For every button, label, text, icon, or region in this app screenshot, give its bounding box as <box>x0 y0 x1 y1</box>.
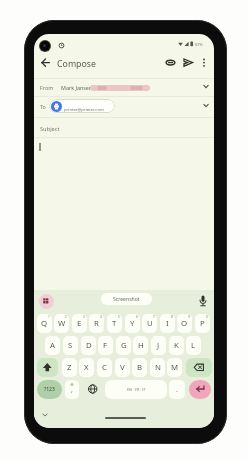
button[interactable]: L <box>186 336 201 355</box>
button[interactable]: A <box>45 336 60 355</box>
button[interactable] <box>196 294 211 309</box>
staticText: P <box>200 318 205 329</box>
staticText: B <box>137 362 143 373</box>
staticText: T <box>112 318 117 329</box>
button[interactable]: B <box>132 358 147 377</box>
button[interactable]: O <box>177 314 192 333</box>
button[interactable]: G <box>116 336 131 355</box>
button[interactable] <box>39 294 54 309</box>
staticText: Compose <box>57 58 97 70</box>
staticText: E <box>77 318 82 329</box>
button[interactable] <box>37 358 58 377</box>
staticText: J <box>157 340 160 351</box>
button[interactable]: I <box>160 314 175 333</box>
button[interactable] <box>196 55 211 70</box>
staticText: Y <box>130 318 135 329</box>
button[interactable]: N <box>150 358 165 377</box>
staticText: EN · FR · IT <box>127 387 146 392</box>
button[interactable]: W <box>54 314 69 333</box>
button[interactable]: , <box>65 380 79 399</box>
staticText: A <box>50 340 55 351</box>
staticText: 0 <box>206 315 208 319</box>
staticText: 9 <box>188 315 190 319</box>
button[interactable] <box>38 55 53 70</box>
staticText: . <box>176 385 178 395</box>
staticText: 4 <box>100 315 102 319</box>
staticText: From <box>40 84 54 91</box>
button[interactable]: EN · FR · IT <box>105 380 167 399</box>
staticText: O <box>181 318 188 329</box>
staticText: F <box>103 340 108 351</box>
staticText: printer@printer.com <box>64 107 104 113</box>
button[interactable]: K <box>169 336 184 355</box>
button[interactable]: J <box>151 336 166 355</box>
button[interactable]: U <box>142 314 157 333</box>
button[interactable]: D <box>81 336 96 355</box>
button[interactable]: E <box>72 314 87 333</box>
staticText: ?123 <box>44 386 55 393</box>
button[interactable]: ?123 <box>37 380 62 399</box>
staticText: Z <box>67 362 72 373</box>
staticText: 3 <box>83 315 85 319</box>
button[interactable]: Y <box>125 314 140 333</box>
staticText: 1 <box>48 315 50 319</box>
staticText: G <box>121 340 127 351</box>
staticText: 6 <box>136 315 138 319</box>
button[interactable]: M <box>167 358 182 377</box>
staticText: Screenshot <box>113 296 140 303</box>
button[interactable]: Q <box>37 314 52 333</box>
button[interactable]: H <box>133 336 148 355</box>
button[interactable]: F <box>98 336 113 355</box>
staticText: V <box>120 362 125 373</box>
staticText: K <box>174 340 179 351</box>
button[interactable]: S <box>63 336 78 355</box>
button[interactable]: . <box>169 380 185 399</box>
staticText: 67% <box>195 42 203 47</box>
button[interactable]: Screenshot <box>101 293 152 305</box>
button[interactable]: X <box>79 358 94 377</box>
staticText: To <box>40 103 46 110</box>
staticText: 7 <box>153 315 155 319</box>
staticText: Q <box>41 318 48 329</box>
button[interactable]: C <box>97 358 112 377</box>
button[interactable] <box>180 55 195 70</box>
staticText: U <box>147 318 153 329</box>
staticText: Subject <box>40 125 60 133</box>
staticText: L <box>191 340 196 351</box>
staticText: N <box>155 362 161 373</box>
button[interactable] <box>189 380 211 399</box>
staticText: W <box>58 318 66 329</box>
staticText: S <box>68 340 73 351</box>
button[interactable]: T <box>107 314 122 333</box>
button[interactable] <box>163 55 178 70</box>
staticText: 5 <box>118 315 120 319</box>
staticText: X <box>84 362 89 373</box>
staticText: Mark Jansen <box>61 84 93 91</box>
staticText: M <box>171 362 179 373</box>
button[interactable]: Z <box>62 358 77 377</box>
staticText: 8 <box>171 315 173 319</box>
staticText: , <box>71 385 73 395</box>
staticText: I <box>166 318 169 329</box>
button[interactable] <box>186 358 212 377</box>
staticText: C <box>102 362 107 373</box>
button[interactable]: P <box>195 314 210 333</box>
staticText: H <box>138 340 144 351</box>
button[interactable] <box>84 380 101 398</box>
staticText: D <box>86 340 92 351</box>
staticText: R <box>94 318 99 329</box>
staticText: 2 <box>65 315 67 319</box>
button[interactable]: R <box>89 314 104 333</box>
button[interactable]: V <box>115 358 130 377</box>
button[interactable]: printer@printer.com <box>49 99 115 113</box>
